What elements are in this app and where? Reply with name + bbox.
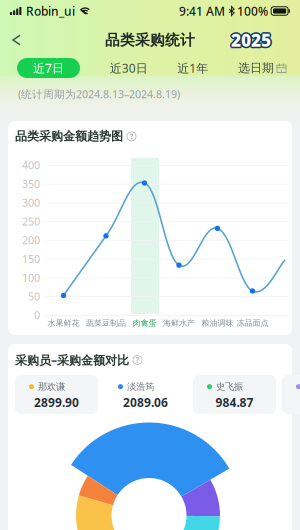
staticText: ?	[135, 355, 139, 365]
staticText: 粮油调味	[201, 318, 233, 328]
button[interactable]: 王	[282, 375, 300, 414]
button[interactable]: 选日期	[238, 58, 286, 78]
staticText: 100%	[237, 3, 268, 19]
staticText: 150	[22, 252, 40, 266]
button[interactable]: Back	[0, 24, 31, 50]
button[interactable]: 淡浩筠	[104, 375, 187, 414]
staticText: 400	[22, 158, 40, 172]
staticText: 2025	[232, 27, 272, 50]
staticText: 淡浩筠	[127, 381, 154, 392]
staticText: 2899.90	[34, 394, 79, 410]
staticText: 2025	[229, 28, 269, 51]
staticText: 2025	[230, 30, 270, 53]
button[interactable]: 史飞振	[193, 375, 276, 414]
staticText: 近7日	[33, 60, 64, 76]
staticText: 2025	[232, 30, 272, 53]
staticText: 350	[22, 177, 40, 191]
staticText: 品类采购统计	[105, 31, 195, 49]
staticText: 品类采购金额趋势图	[15, 129, 123, 144]
staticText: 2025	[231, 27, 271, 50]
staticText: 100	[22, 270, 40, 285]
staticText: 0	[34, 308, 40, 322]
staticText: 300	[22, 195, 40, 210]
staticText: 2089.06	[123, 394, 168, 410]
staticText: ?	[129, 131, 133, 142]
staticText: Robin_ui	[26, 3, 75, 19]
staticText: 史飞振	[216, 381, 243, 392]
staticText: 那欢谦	[38, 381, 65, 392]
button[interactable]: 2025	[227, 28, 300, 46]
staticText: 选日期	[238, 61, 274, 75]
staticText: 水果鲜花	[47, 318, 79, 328]
staticText: (统计周期为2024.8.13–2024.8.19)	[18, 87, 180, 101]
button[interactable]: 近1年	[177, 58, 208, 78]
staticText: 2025	[232, 28, 272, 51]
staticText: 50	[28, 289, 40, 303]
staticText: 2025	[231, 28, 271, 51]
staticText: 近30日	[110, 60, 148, 76]
staticText: 2025	[231, 30, 271, 53]
staticText: 肉禽蛋	[132, 318, 156, 328]
staticText: 250	[22, 214, 40, 228]
staticText: 近1年	[177, 60, 208, 76]
button[interactable]: 那欢谦	[15, 375, 98, 414]
staticText: 海鲜水产	[163, 318, 195, 328]
staticText: 9:41 AM	[179, 3, 225, 19]
button[interactable]: 近7日	[17, 58, 80, 78]
staticText: 采购员–采购金额对比	[15, 352, 129, 368]
button[interactable]: 近30日	[110, 58, 148, 78]
staticText: 冻品面点	[236, 318, 268, 328]
staticText: 200	[22, 233, 40, 247]
staticText: 2025	[230, 27, 270, 50]
staticText: 蔬菜豆制品	[86, 318, 126, 328]
staticText: 984.87	[215, 394, 253, 410]
